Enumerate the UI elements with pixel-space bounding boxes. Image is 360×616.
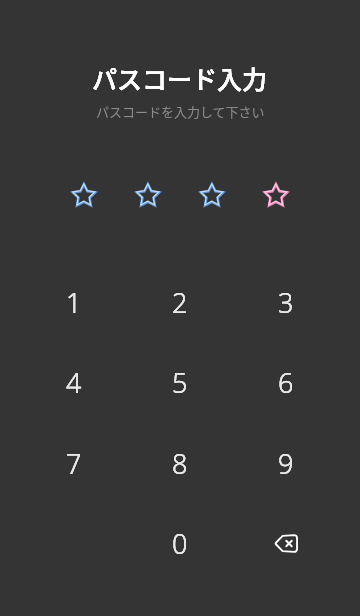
button[interactable]: 7 bbox=[29, 428, 119, 498]
staticText: 5 bbox=[172, 364, 188, 401]
staticText: 0 bbox=[172, 525, 188, 562]
button[interactable]: 8 bbox=[135, 428, 225, 498]
staticText: 6 bbox=[278, 364, 294, 401]
staticText: 5 bbox=[172, 364, 188, 401]
button[interactable]: 0 bbox=[135, 508, 225, 578]
staticText: 2 bbox=[172, 284, 188, 321]
button[interactable]: Delete bbox=[241, 508, 331, 578]
staticText: 8 bbox=[172, 445, 188, 482]
button[interactable]: 6 bbox=[241, 347, 331, 417]
staticText: 1 bbox=[66, 284, 82, 321]
staticText: 6 bbox=[278, 364, 294, 401]
staticText: パスコード入力 bbox=[92, 60, 268, 96]
staticText: 9 bbox=[278, 445, 294, 482]
staticText: パスコード入力 bbox=[92, 60, 268, 96]
staticText: 0 bbox=[172, 525, 188, 562]
staticText: 4 bbox=[66, 364, 82, 401]
staticText: 4 bbox=[66, 364, 82, 401]
button[interactable]: 4 bbox=[29, 347, 119, 417]
staticText: 3 bbox=[278, 284, 294, 321]
staticText: パスコードを入力して下さい bbox=[96, 102, 265, 121]
button[interactable]: 5 bbox=[135, 347, 225, 417]
staticText: 7 bbox=[66, 445, 82, 482]
staticText: 1 bbox=[66, 284, 82, 321]
button[interactable]: 1 bbox=[29, 267, 119, 337]
button[interactable]: 3 bbox=[241, 267, 331, 337]
button[interactable]: 9 bbox=[241, 428, 331, 498]
staticText: 3 bbox=[278, 284, 294, 321]
staticText: 7 bbox=[66, 445, 82, 482]
staticText: 2 bbox=[172, 284, 188, 321]
staticText: 8 bbox=[172, 445, 188, 482]
button[interactable]: 2 bbox=[135, 267, 225, 337]
staticText: 9 bbox=[278, 445, 294, 482]
